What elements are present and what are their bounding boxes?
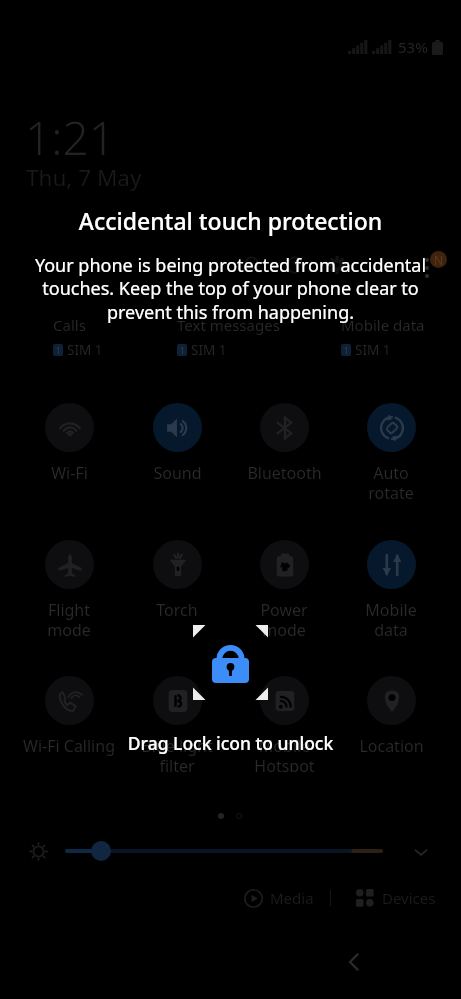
button[interactable]: Mobile Hotspot bbox=[232, 676, 336, 772]
button[interactable]: Auto rotate bbox=[339, 403, 443, 499]
button[interactable]: Media bbox=[244, 888, 314, 908]
staticText: Auto rotate bbox=[368, 462, 414, 499]
staticText: Media bbox=[270, 888, 314, 908]
staticText: Mobile Hotspot bbox=[254, 735, 315, 772]
staticText: Your phone is being protected from accid… bbox=[22, 253, 439, 325]
button[interactable]: Wi-Fi Calling bbox=[17, 676, 121, 772]
button[interactable]: Calls bbox=[53, 315, 103, 359]
button[interactable]: Sound bbox=[125, 403, 229, 499]
staticText: Thu, 7 May bbox=[26, 162, 142, 193]
staticText: Devices bbox=[382, 888, 436, 908]
staticText: Wi-Fi bbox=[51, 462, 88, 484]
staticText: 1:21 bbox=[25, 106, 116, 169]
button[interactable]: Mobile data bbox=[341, 315, 425, 359]
staticText: 53% bbox=[398, 37, 428, 57]
button[interactable]: Location bbox=[339, 676, 443, 772]
button[interactable]: Expand bbox=[410, 841, 432, 863]
button[interactable]: Bluetooth bbox=[232, 403, 336, 499]
staticText: 1 bbox=[344, 345, 349, 356]
button[interactable]: Flight mode bbox=[17, 540, 121, 636]
staticText: SIM 1 bbox=[355, 341, 391, 359]
staticText: 1 bbox=[180, 345, 185, 356]
button[interactable]: Brightness bbox=[65, 849, 383, 853]
staticText: N bbox=[434, 252, 444, 268]
staticText: Blue light filter bbox=[141, 735, 213, 772]
staticText: Bluetooth bbox=[247, 462, 322, 484]
staticText: Mobile data bbox=[341, 315, 425, 335]
staticText: Calls bbox=[53, 315, 86, 335]
button[interactable]: Back bbox=[332, 940, 376, 984]
button[interactable]: Torch bbox=[125, 540, 229, 636]
button[interactable]: Power mode bbox=[232, 540, 336, 636]
staticText: SIM 1 bbox=[67, 341, 103, 359]
staticText: Torch bbox=[156, 599, 198, 621]
staticText: Wi-Fi Calling bbox=[23, 735, 115, 757]
button[interactable]: Text messages bbox=[177, 315, 280, 359]
staticText: Drag Lock icon to unlock bbox=[0, 731, 461, 755]
staticText: 1 bbox=[56, 345, 61, 356]
staticText: Power mode bbox=[260, 599, 308, 636]
staticText: Flight mode bbox=[47, 599, 91, 636]
button[interactable]: Profile bbox=[430, 251, 447, 268]
staticText: Location bbox=[359, 735, 424, 757]
button[interactable]: Blue light filter bbox=[125, 676, 229, 772]
staticText: Sound bbox=[153, 462, 202, 484]
staticText: Text messages bbox=[177, 315, 280, 335]
button[interactable]: Wi-Fi bbox=[17, 403, 121, 499]
staticText: Accidental touch protection bbox=[0, 205, 461, 236]
button[interactable]: Mobile data bbox=[339, 540, 443, 636]
staticText: SIM 1 bbox=[191, 341, 227, 359]
button[interactable]: More options bbox=[425, 258, 429, 278]
button[interactable]: Devices bbox=[356, 888, 436, 908]
staticText: Mobile data bbox=[365, 599, 417, 636]
